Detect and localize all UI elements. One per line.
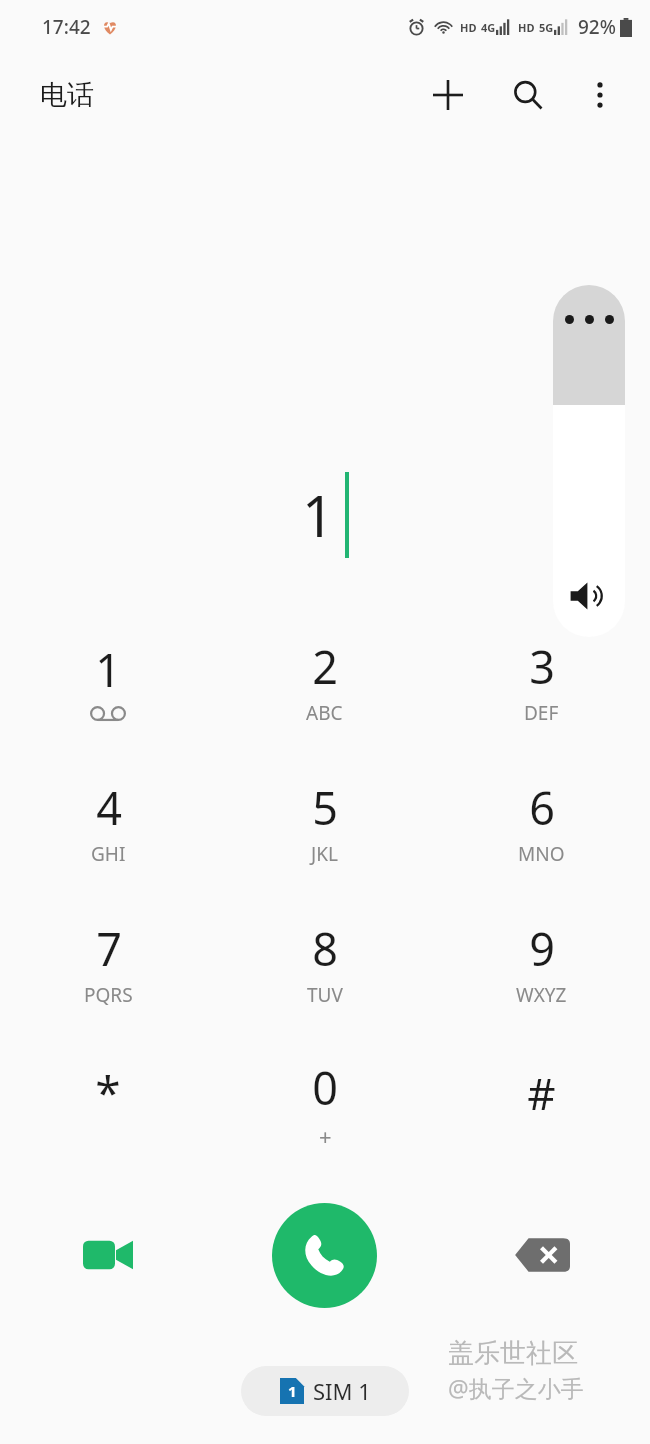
staticText: DEF (524, 700, 559, 726)
staticText: 盖乐世社区 (448, 1337, 578, 1370)
button[interactable]: 4 (0, 751, 216, 892)
button[interactable]: More options (572, 67, 628, 123)
button[interactable]: 0 (216, 1033, 433, 1174)
staticText: 1 (302, 477, 335, 553)
staticText: 0 (312, 1057, 338, 1118)
button[interactable]: 1 (241, 1366, 409, 1416)
staticText: WXYZ (516, 982, 567, 1008)
button[interactable]: 8 (216, 892, 433, 1033)
staticText: 2 (312, 636, 338, 697)
staticText: 4 (96, 777, 122, 838)
staticText: 92% (578, 14, 616, 40)
staticText: 5G (539, 20, 554, 35)
button[interactable]: Volume control (553, 285, 625, 637)
button[interactable]: 7 (0, 892, 216, 1033)
button[interactable]: 9 (433, 892, 650, 1033)
staticText: 电话 (40, 78, 94, 112)
staticText: GHI (91, 841, 126, 867)
staticText: 1 (95, 639, 121, 700)
staticText: # (527, 1063, 556, 1123)
staticText: 6 (529, 777, 555, 838)
button[interactable]: Video call (0, 1192, 216, 1318)
staticText: 7 (96, 918, 122, 979)
button[interactable]: # (433, 1033, 650, 1174)
button[interactable]: Call (272, 1203, 377, 1308)
staticText: 4G (481, 20, 496, 35)
button[interactable]: * (0, 1033, 216, 1174)
button[interactable]: Search (500, 67, 556, 123)
staticText: * (95, 1061, 121, 1124)
button[interactable]: 3 (433, 610, 650, 751)
staticText: PQRS (84, 982, 133, 1008)
staticText: SIM 1 (313, 1376, 371, 1406)
staticText: HD (518, 20, 535, 35)
staticText: 9 (529, 918, 555, 979)
staticText: @执子之小手 (448, 1372, 584, 1403)
button[interactable]: Add contact (420, 67, 476, 123)
staticText: 5 (312, 777, 338, 838)
button[interactable]: 1 (0, 610, 216, 751)
staticText: JKL (311, 841, 338, 867)
button[interactable]: 2 (216, 610, 433, 751)
staticText: 17:42 (42, 14, 91, 40)
staticText: ABC (306, 700, 343, 726)
staticText: + (319, 1121, 332, 1151)
staticText: 1 (288, 1381, 297, 1401)
button[interactable]: 5 (216, 751, 433, 892)
staticText: TUV (307, 982, 343, 1008)
staticText: HD (460, 20, 477, 35)
button[interactable]: 6 (433, 751, 650, 892)
staticText: MNO (518, 841, 565, 867)
staticText: 8 (312, 918, 338, 979)
staticText: 3 (529, 636, 555, 697)
button[interactable]: Backspace (433, 1192, 650, 1318)
